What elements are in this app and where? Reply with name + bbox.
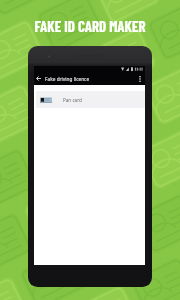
staticText: FAKE ID CARD MAKER: [34, 17, 146, 35]
button[interactable]: Back: [34, 72, 43, 85]
staticText: Fake driving licence: [45, 76, 90, 82]
staticText: Pan card: [63, 97, 82, 103]
button[interactable]: Pan card: [36, 91, 145, 108]
button[interactable]: More options: [135, 72, 145, 85]
